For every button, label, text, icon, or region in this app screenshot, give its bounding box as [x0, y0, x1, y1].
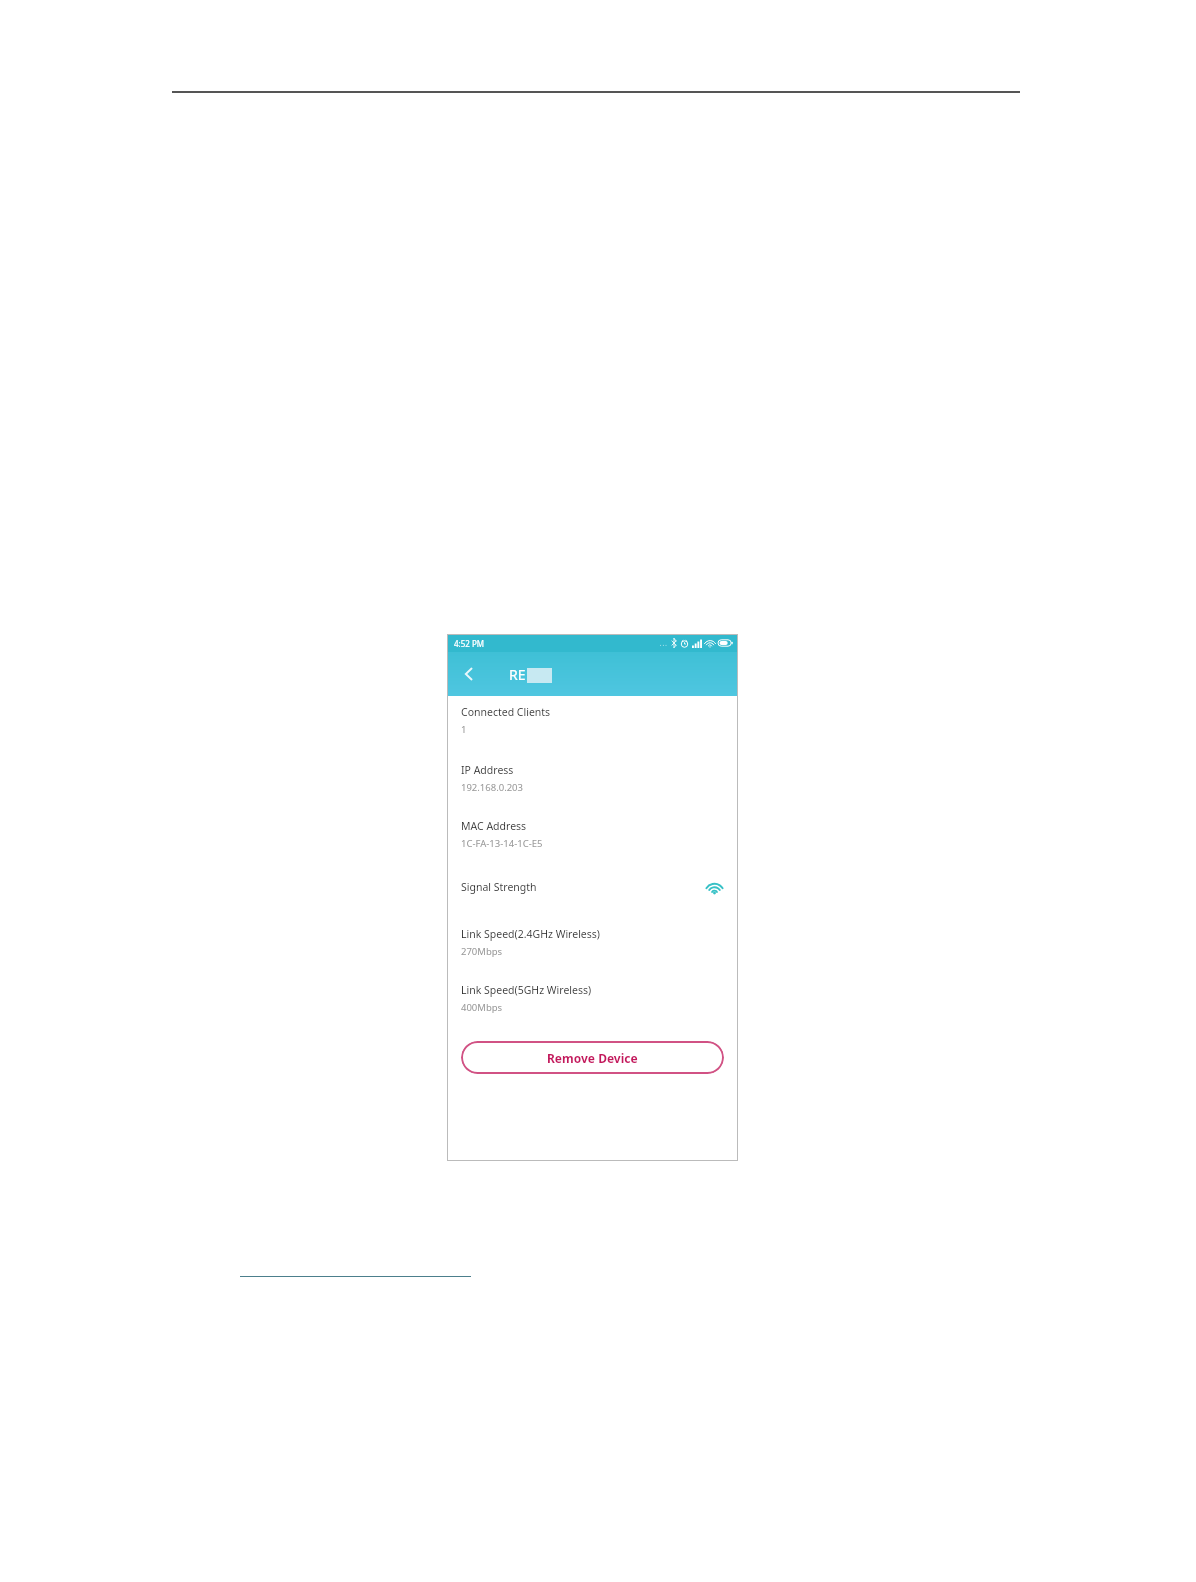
staticText: RE [509, 665, 526, 684]
staticText: Link Speed(2.4GHz Wireless) [461, 927, 600, 941]
staticText: 4:52 PM [454, 638, 485, 649]
staticText: Remove Device [547, 1050, 638, 1066]
staticText: 400Mbps [461, 1001, 503, 1014]
staticText: IP Address [461, 763, 514, 777]
staticText: 1C-FA-13-14-1C-E5 [461, 837, 543, 850]
staticText: 192.168.0.203 [461, 781, 523, 794]
staticText: 1 [461, 723, 467, 736]
other: Signal strength [704, 877, 724, 897]
staticText: Link Speed(5GHz Wireless) [461, 983, 592, 997]
staticText: MAC Address [461, 819, 527, 833]
staticText: Connected Clients [461, 705, 551, 719]
staticText: Signal Strength [461, 880, 537, 894]
button[interactable]: Remove Device [461, 1041, 724, 1074]
staticText: 270Mbps [461, 945, 503, 958]
button[interactable]: Back [455, 660, 483, 688]
